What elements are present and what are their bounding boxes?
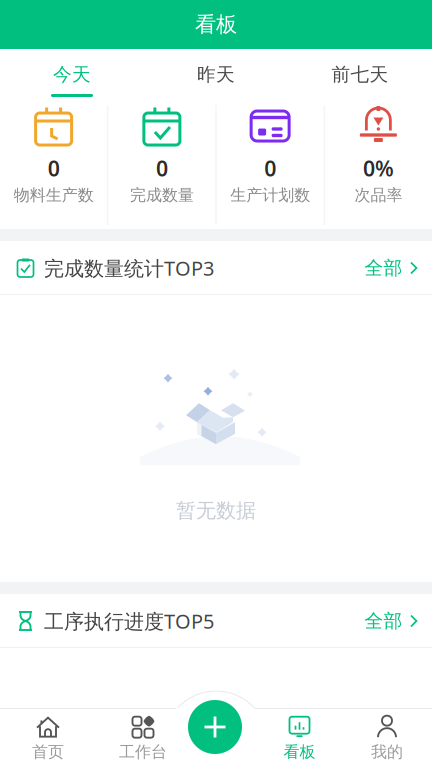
staticText: 物料生产数 xyxy=(14,185,94,205)
staticText: 看板 xyxy=(283,742,315,762)
staticText: 0 xyxy=(48,154,60,182)
staticText: 首页 xyxy=(32,742,64,762)
staticText: 0 xyxy=(156,154,168,182)
button[interactable]: 0% xyxy=(325,101,432,229)
staticText: 0% xyxy=(363,154,394,182)
button[interactable]: 前七天 xyxy=(288,49,432,101)
button[interactable]: 全部 xyxy=(354,601,418,640)
staticText: 暂无数据 xyxy=(176,498,256,523)
staticText: 完成数量 xyxy=(130,185,194,205)
staticText: 0 xyxy=(264,154,276,182)
button[interactable]: 看板 xyxy=(257,708,342,768)
staticText: 全部 xyxy=(364,256,402,279)
staticText: 工序执行进度TOP5 xyxy=(44,608,214,634)
button[interactable]: 昨天 xyxy=(144,49,288,101)
button[interactable]: 首页 xyxy=(0,708,96,768)
staticText: 我的 xyxy=(371,742,403,762)
button[interactable]: 0 xyxy=(0,101,107,229)
staticText: 看板 xyxy=(195,11,237,38)
button[interactable]: 工作台 xyxy=(96,708,190,768)
staticText: 完成数量统计TOP3 xyxy=(44,255,214,281)
button[interactable]: 我的 xyxy=(342,708,432,768)
staticText: 前七天 xyxy=(331,63,388,86)
staticText: 昨天 xyxy=(197,63,235,86)
staticText: 全部 xyxy=(364,609,402,632)
staticText: 工作台 xyxy=(119,742,167,762)
button[interactable]: 全部 xyxy=(354,248,418,287)
button[interactable]: 0 xyxy=(216,101,324,229)
staticText: 今天 xyxy=(53,63,91,86)
button[interactable]: 0 xyxy=(108,101,215,229)
button[interactable]: 今天 xyxy=(0,49,144,101)
staticText: 生产计划数 xyxy=(230,185,310,205)
button[interactable]: 新建 xyxy=(186,698,244,756)
staticText: 次品率 xyxy=(354,185,402,205)
